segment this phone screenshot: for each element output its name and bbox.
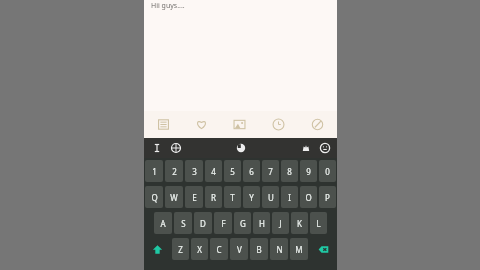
button[interactable]: O — [300, 186, 317, 208]
button[interactable]: 6 — [243, 160, 260, 182]
staticText: 5 — [230, 166, 235, 177]
button[interactable]: 8 — [281, 160, 298, 182]
staticText: 1 — [152, 166, 157, 177]
button[interactable]: W — [165, 186, 183, 208]
staticText: R — [211, 192, 216, 203]
button[interactable]: Stickers — [182, 111, 220, 138]
button[interactable]: Backspace — [310, 238, 336, 260]
button[interactable]: Language — [166, 138, 185, 158]
button[interactable]: 3 — [185, 160, 203, 182]
button[interactable]: Emoji — [315, 138, 334, 158]
button[interactable]: X — [191, 238, 208, 260]
staticText: D — [200, 218, 206, 229]
staticText: U — [268, 192, 274, 203]
staticText: 8 — [287, 166, 292, 177]
button[interactable]: 4 — [205, 160, 222, 182]
staticText: Y — [249, 192, 254, 203]
staticText: 6 — [249, 166, 254, 177]
button[interactable]: 2 — [165, 160, 183, 182]
staticText: T — [230, 192, 235, 203]
staticText: 4 — [211, 166, 216, 177]
staticText: W — [170, 192, 178, 203]
button[interactable]: 7 — [262, 160, 279, 182]
button[interactable]: E — [185, 186, 203, 208]
button[interactable]: Q — [145, 186, 163, 208]
button[interactable]: V — [230, 238, 248, 260]
button[interactable]: F — [214, 212, 232, 234]
button[interactable]: Image — [220, 111, 259, 138]
button[interactable]: 5 — [224, 160, 241, 182]
staticText: Z — [178, 244, 183, 255]
button[interactable]: D — [194, 212, 212, 234]
button[interactable]: T — [224, 186, 241, 208]
button[interactable]: I — [281, 186, 298, 208]
button[interactable]: 1 — [145, 160, 163, 182]
button[interactable]: N — [270, 238, 288, 260]
button[interactable]: Y — [243, 186, 260, 208]
staticText: 9 — [306, 166, 311, 177]
button[interactable]: P — [319, 186, 336, 208]
staticText: 0 — [325, 166, 330, 177]
button[interactable]: H — [253, 212, 270, 234]
button[interactable]: U — [262, 186, 279, 208]
staticText: B — [256, 244, 262, 255]
staticText: H — [259, 218, 265, 229]
button[interactable]: A — [154, 212, 172, 234]
staticText: Q — [151, 192, 158, 203]
button[interactable]: B — [250, 238, 268, 260]
staticText: 2 — [172, 166, 177, 177]
staticText: 7 — [268, 166, 273, 177]
button[interactable]: M — [290, 238, 308, 260]
staticText: G — [240, 218, 246, 229]
button[interactable]: Sticker — [296, 138, 315, 158]
button[interactable]: 9 — [300, 160, 317, 182]
button[interactable]: Shift — [145, 238, 170, 260]
staticText: J — [279, 218, 282, 229]
button[interactable]: L — [310, 212, 327, 234]
button[interactable]: Clipboard — [231, 138, 250, 158]
staticText: A — [160, 218, 166, 229]
button[interactable]: Draw — [298, 111, 337, 138]
staticText: C — [216, 244, 222, 255]
staticText: V — [237, 244, 242, 255]
staticText: N — [276, 244, 283, 255]
staticText: Hii guys.... — [151, 1, 185, 11]
staticText: E — [192, 192, 197, 203]
staticText: O — [305, 192, 312, 203]
staticText: M — [295, 244, 303, 255]
staticText: 3 — [192, 166, 197, 177]
button[interactable]: J — [272, 212, 289, 234]
staticText: F — [221, 218, 226, 229]
button[interactable]: R — [205, 186, 222, 208]
button[interactable]: G — [234, 212, 251, 234]
staticText: L — [316, 218, 321, 229]
button[interactable]: 0 — [319, 160, 336, 182]
button[interactable]: K — [291, 212, 308, 234]
button[interactable]: S — [174, 212, 192, 234]
button[interactable]: Text cursor — [147, 138, 166, 158]
button[interactable]: C — [210, 238, 228, 260]
staticText: S — [181, 218, 186, 229]
staticText: P — [325, 192, 330, 203]
button[interactable]: Notes — [144, 111, 182, 138]
staticText: I — [288, 192, 291, 203]
button[interactable]: Schedule — [259, 111, 298, 138]
button[interactable]: Z — [172, 238, 189, 260]
staticText: K — [297, 218, 302, 229]
staticText: X — [197, 244, 202, 255]
